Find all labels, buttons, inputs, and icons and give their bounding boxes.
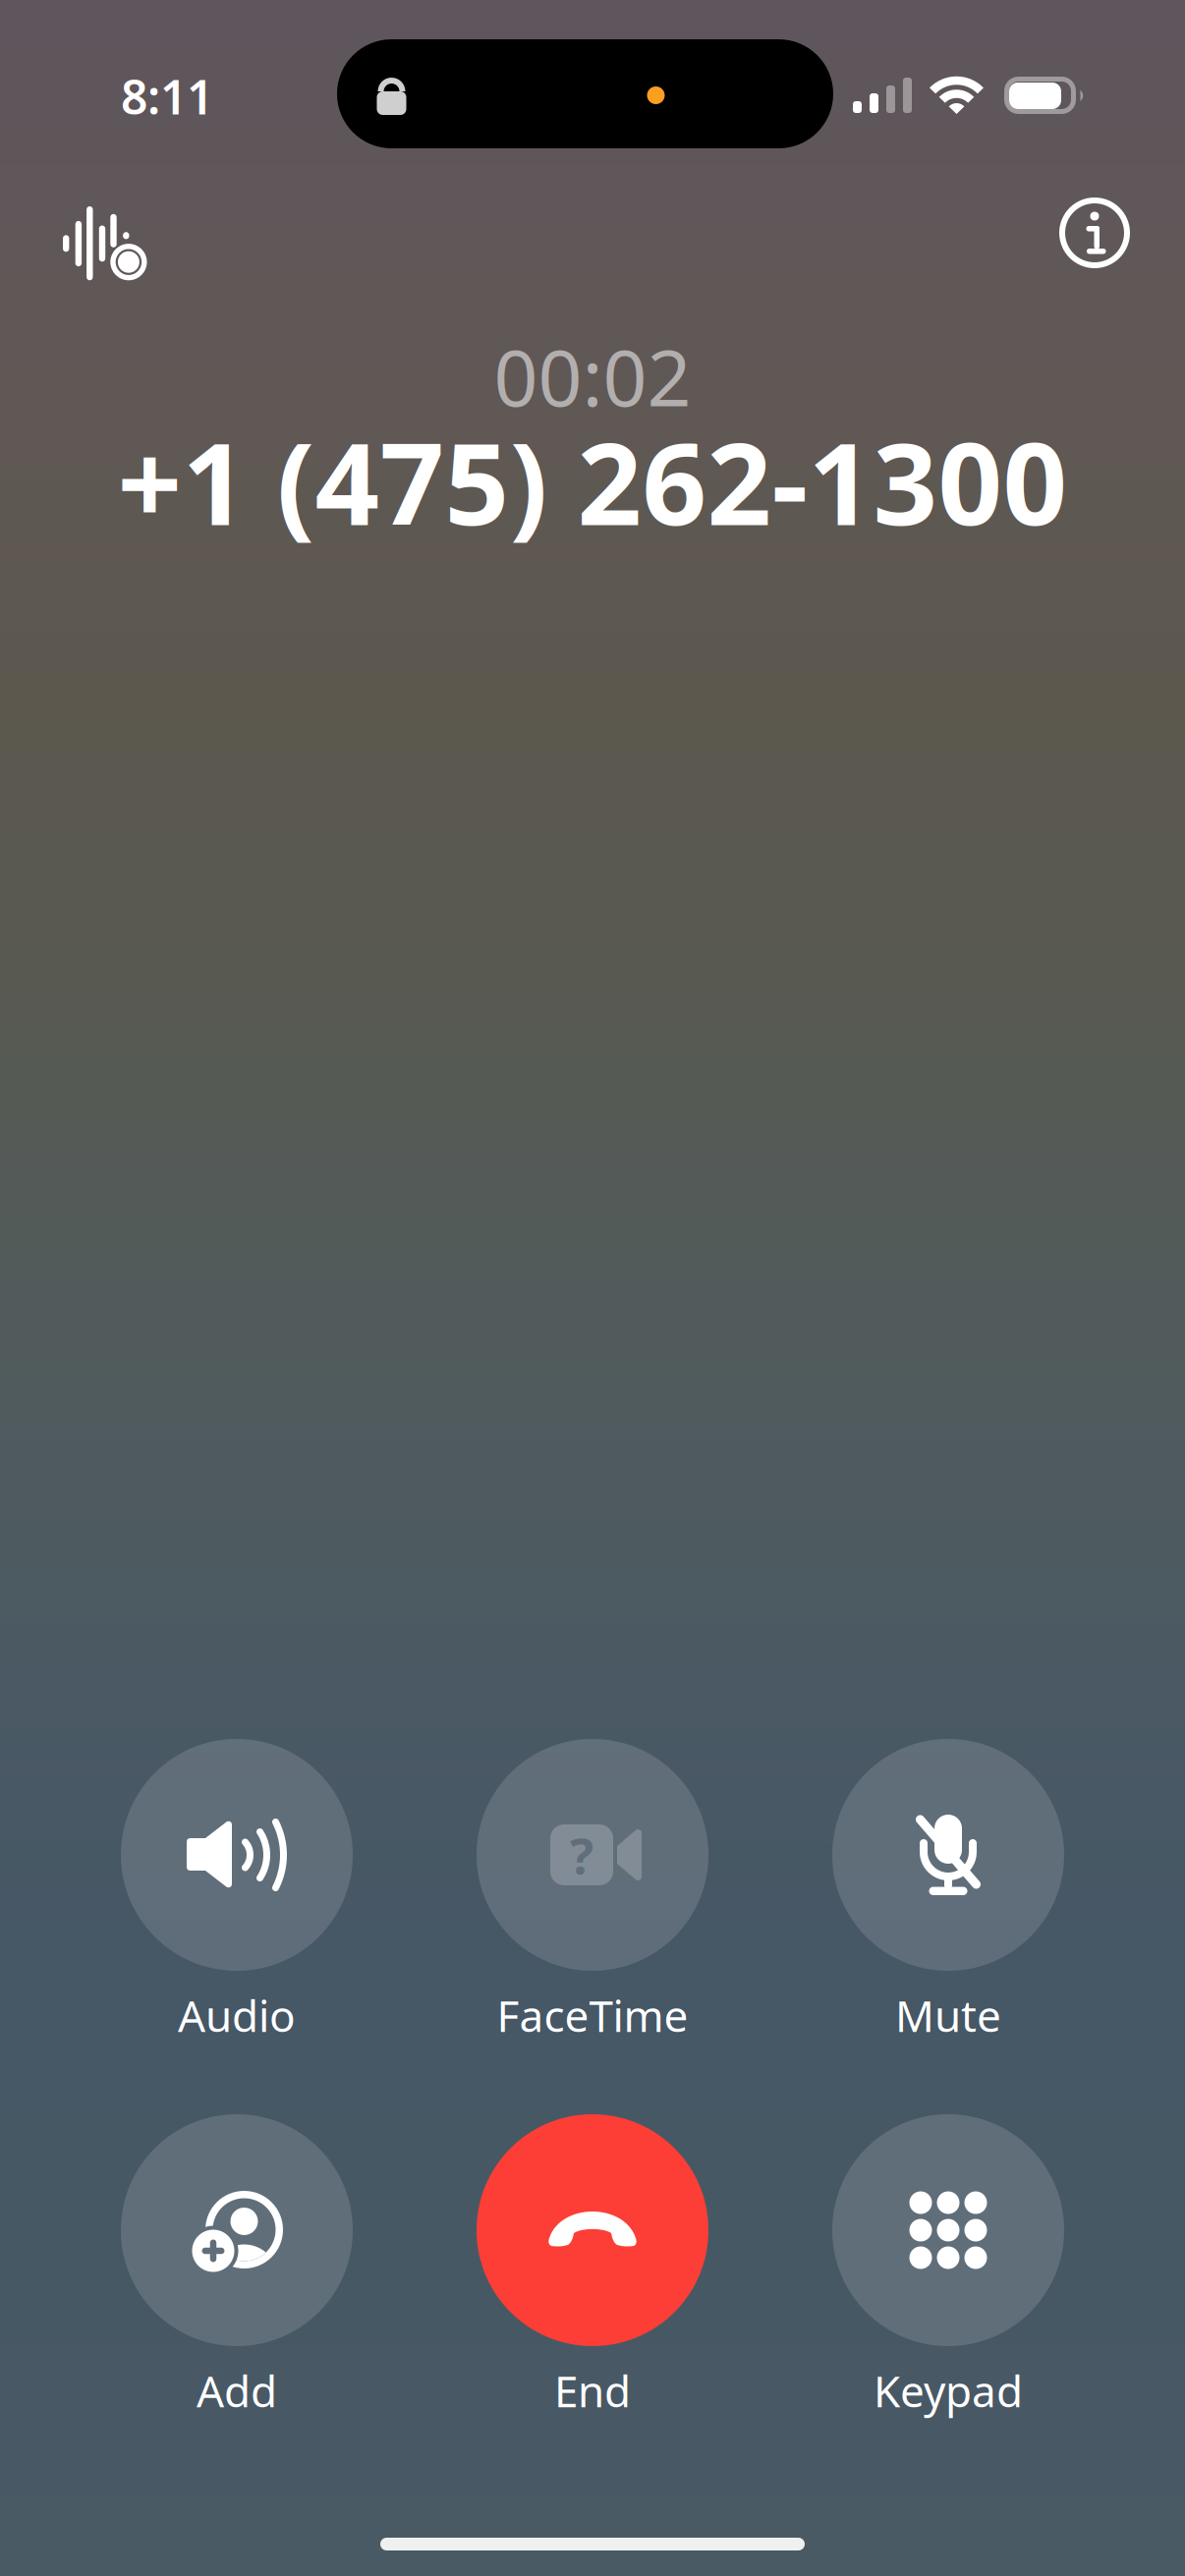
staticText: 00:02 [494,325,691,428]
button[interactable]: Record call [31,180,179,308]
button[interactable]: Add [59,2114,415,2448]
button[interactable]: Keypad [770,2114,1126,2448]
button[interactable]: End [415,2114,770,2448]
button[interactable]: Call details [1021,169,1168,297]
staticText: 8:11 [121,65,213,128]
staticText: +1 (475) 262-1300 [117,407,1068,556]
button[interactable]: Mute [770,1739,1126,2073]
staticText: FaceTime [497,1987,688,2044]
staticText: ? [570,1822,593,1888]
staticText: Audio [178,1987,296,2044]
button[interactable]: ? [415,1739,770,2073]
staticText: Mute [895,1987,1001,2044]
staticText: End [554,2362,631,2419]
staticText: Add [197,2362,277,2419]
button[interactable]: Audio [59,1739,415,2073]
staticText: Keypad [874,2362,1023,2419]
